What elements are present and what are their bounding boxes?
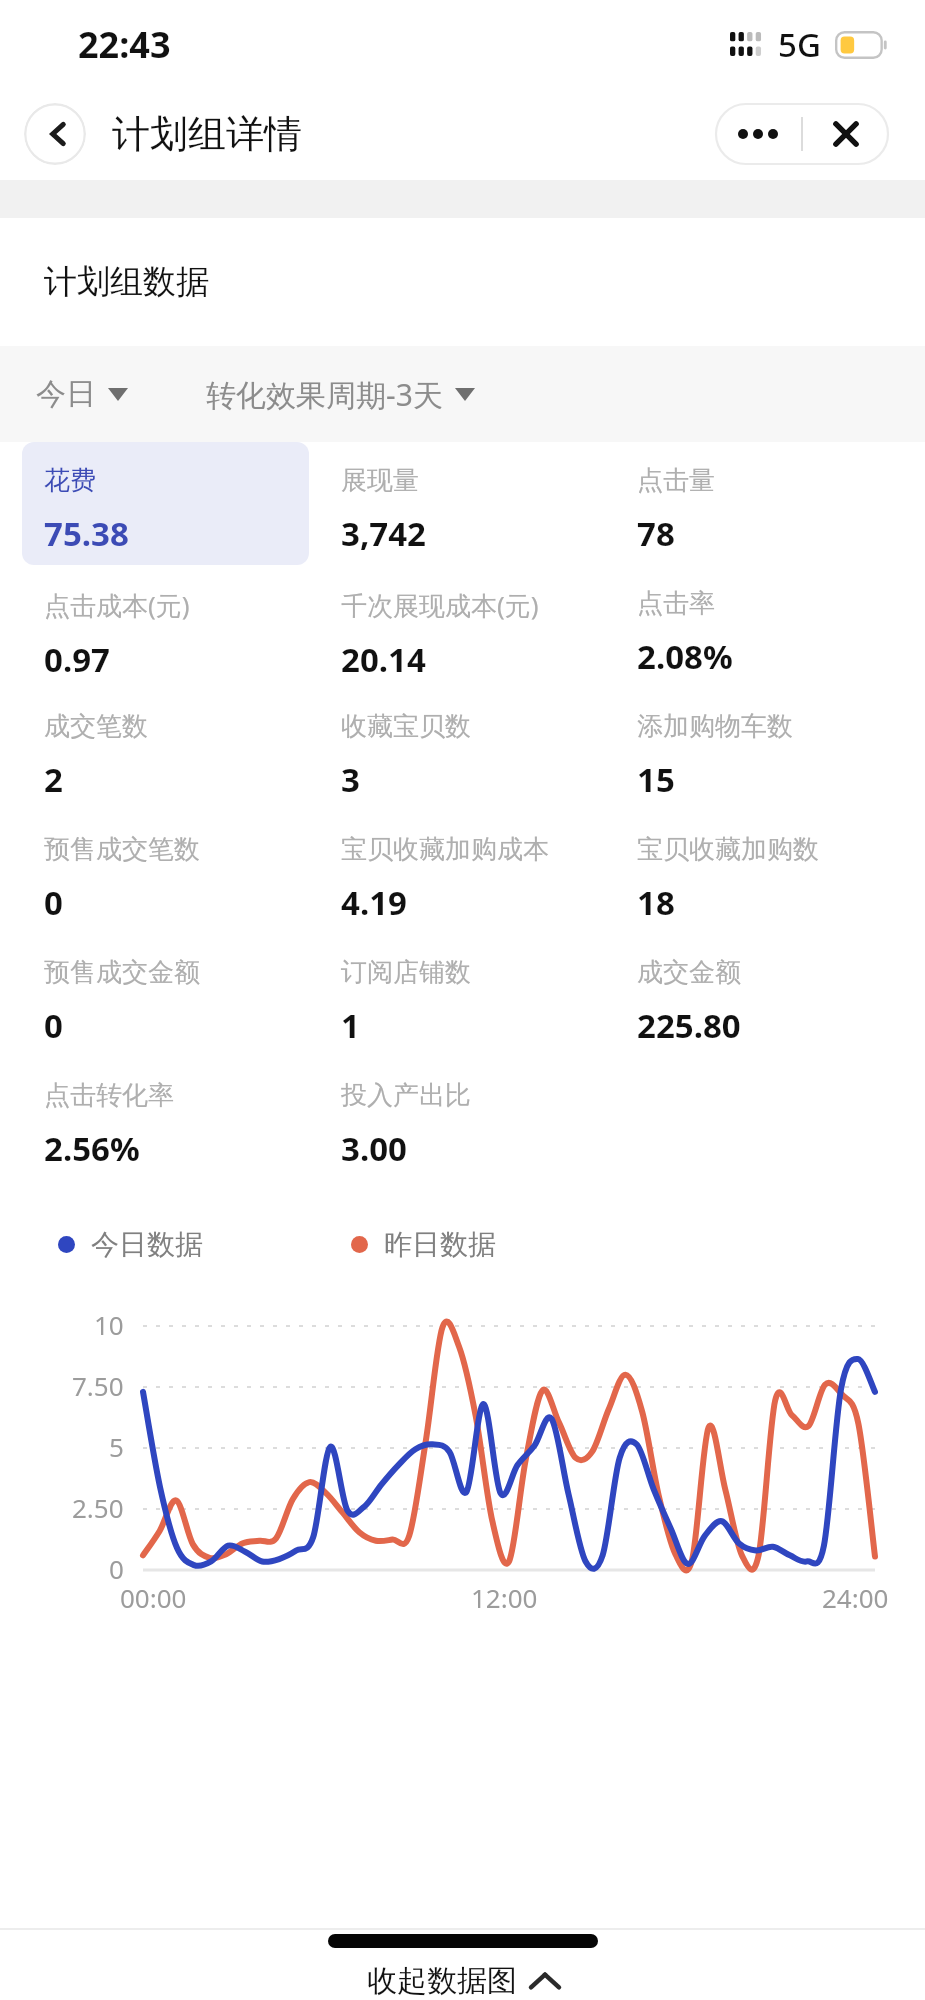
button[interactable]: 宝贝收藏加购数 [615, 811, 901, 934]
staticText: 7.50 [72, 1368, 124, 1403]
button[interactable]: Back [24, 103, 86, 165]
staticText: 展现量 [341, 464, 419, 497]
staticText: 18 [637, 880, 675, 925]
staticText: 收藏宝贝数 [341, 710, 471, 743]
staticText: 3.00 [341, 1126, 407, 1171]
staticText: 0.97 [44, 637, 110, 682]
button[interactable]: 成交笔数 [22, 688, 309, 811]
staticText: 宝贝收藏加购数 [637, 833, 819, 866]
button[interactable]: 收藏宝贝数 [319, 688, 605, 811]
staticText: 22:43 [78, 20, 171, 69]
staticText: 1 [341, 1003, 360, 1048]
staticText: 78 [637, 511, 675, 556]
button[interactable]: More options [715, 103, 801, 165]
staticText: 225.80 [637, 1003, 741, 1048]
staticText: 添加购物车数 [637, 710, 793, 743]
button[interactable]: 成交金额 [615, 934, 901, 1057]
staticText: 12:00 [471, 1580, 538, 1615]
button[interactable]: 添加购物车数 [615, 688, 901, 811]
staticText: 点击量 [637, 464, 715, 497]
staticText: 宝贝收藏加购成本 [341, 833, 549, 866]
button[interactable]: 今日数据 [58, 1227, 203, 1262]
staticText: 2.50 [72, 1490, 124, 1525]
button[interactable]: 点击转化率 [22, 1057, 309, 1180]
button[interactable]: 昨日数据 [351, 1227, 496, 1262]
staticText: 计划组详情 [112, 110, 302, 158]
button[interactable]: 预售成交金额 [22, 934, 309, 1057]
staticText: 4.19 [341, 880, 407, 925]
staticText: 15 [637, 757, 675, 802]
staticText: 2.08% [637, 634, 733, 679]
staticText: 今日 [36, 375, 96, 413]
button[interactable]: 今日 [30, 367, 134, 421]
button[interactable]: 收起数据图 [0, 1930, 925, 2000]
staticText: 点击转化率 [44, 1079, 174, 1112]
button[interactable]: 投入产出比 [319, 1057, 605, 1180]
button[interactable]: 转化效果周期-3天 [200, 366, 481, 423]
staticText: 成交笔数 [44, 710, 148, 743]
staticText: 收起数据图 [367, 1962, 517, 2000]
button[interactable]: 点击率 [615, 565, 901, 688]
staticText: 千次展现成本(元) [341, 587, 539, 623]
staticText: 0 [44, 880, 63, 925]
staticText: 预售成交金额 [44, 956, 200, 989]
staticText: 2.56% [44, 1126, 140, 1171]
staticText: 5G [778, 22, 821, 67]
staticText: 计划组数据 [44, 261, 209, 303]
staticText: 昨日数据 [384, 1227, 496, 1262]
staticText: 24:00 [822, 1580, 889, 1615]
staticText: 3,742 [341, 511, 426, 556]
button[interactable]: 点击量 [615, 442, 901, 565]
button[interactable]: 点击成本(元) [22, 565, 309, 688]
button[interactable]: 千次展现成本(元) [319, 565, 605, 688]
staticText: 0 [44, 1003, 63, 1048]
button[interactable]: 展现量 [319, 442, 605, 565]
staticText: 点击成本(元) [44, 587, 190, 623]
staticText: 2 [44, 757, 63, 802]
staticText: 转化效果周期-3天 [206, 374, 443, 415]
staticText: 0 [109, 1551, 124, 1586]
button[interactable]: 宝贝收藏加购成本 [319, 811, 605, 934]
staticText: 20.14 [341, 637, 426, 682]
button[interactable]: 预售成交笔数 [22, 811, 309, 934]
staticText: 预售成交笔数 [44, 833, 200, 866]
staticText: 10 [94, 1307, 124, 1342]
staticText: 00:00 [120, 1580, 187, 1615]
staticText: 今日数据 [91, 1227, 203, 1262]
button[interactable]: 订阅店铺数 [319, 934, 605, 1057]
staticText: 花费 [44, 464, 96, 497]
staticText: 成交金额 [637, 956, 741, 989]
staticText: 5 [109, 1429, 124, 1464]
staticText: 点击率 [637, 587, 715, 620]
staticText: 75.38 [44, 511, 129, 556]
staticText: 投入产出比 [341, 1079, 471, 1112]
staticText: 订阅店铺数 [341, 956, 471, 989]
staticText: 3 [341, 757, 360, 802]
button[interactable]: 花费 [22, 442, 309, 565]
button[interactable]: Close [803, 103, 889, 165]
